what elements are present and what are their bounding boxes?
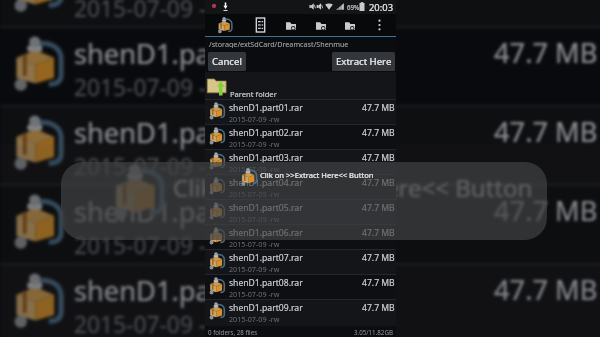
staticText: 47.7 MB: [362, 102, 395, 114]
staticText: shenD1.part05.rar: [229, 202, 303, 214]
staticText: Extract Here: [336, 55, 392, 68]
staticText: shenD1.part01.rar: [229, 102, 303, 114]
staticText: shenD1.part04.rar: [229, 177, 303, 189]
button[interactable]: shenD1.part05.rar: [0, 263, 600, 337]
staticText: 47.7 MB: [362, 177, 395, 189]
staticText: 47.7 MB: [362, 202, 395, 214]
staticText: 2015-07-09 -rw: [74, 0, 234, 24]
button[interactable]: List view: [255, 18, 266, 32]
button[interactable]: shenD1.part09.rar: [205, 299, 396, 324]
staticText: shenD1.part08.rar: [229, 277, 303, 289]
button[interactable]: Copy: [286, 21, 296, 31]
staticText: 47.7 MB: [362, 127, 395, 139]
staticText: 2015-07-09 -rw: [74, 72, 234, 103]
staticText: shenD1.part06.rar: [229, 227, 303, 239]
button[interactable]: shenD1.part06.rar: [205, 224, 396, 249]
button[interactable]: shenD1.part01.rar: [205, 99, 396, 124]
button[interactable]: New folder: [345, 21, 355, 31]
staticText: 47.7 MB: [362, 302, 395, 314]
staticText: 47.7 MB: [362, 152, 395, 164]
staticText: 2015-07-09 -rw: [74, 230, 234, 261]
button[interactable]: shenD1.part05.rar: [205, 199, 396, 224]
staticText: 47.7 MB: [362, 227, 395, 239]
staticText: 2015-07-09 -rw: [74, 151, 234, 182]
staticText: 69%: [347, 3, 360, 11]
staticText: 2015-07-09 -rw: [229, 164, 280, 174]
staticText: 2015-07-09 -rw: [74, 309, 234, 337]
staticText: 2015-07-09 -rw: [229, 314, 280, 324]
button[interactable]: Archive: [217, 17, 233, 33]
staticText: 2015-07-09 -rw: [229, 189, 280, 199]
staticText: 47.7 MB: [362, 252, 395, 264]
staticText: 47.7 MB: [494, 271, 598, 308]
staticText: 3.05/11.82GB: [354, 328, 393, 336]
staticText: 47.7 MB: [494, 34, 598, 71]
button[interactable]: shenD1.part02.rar: [0, 26, 600, 105]
staticText: Parent folder: [230, 89, 277, 99]
staticText: shenD1.part09.rar: [229, 302, 303, 314]
staticText: shenD1.part07.rar: [229, 252, 303, 264]
button[interactable]: More options: [376, 19, 383, 31]
staticText: shenD1.part04.rar: [74, 193, 308, 230]
staticText: shenD1.part05.rar: [74, 272, 308, 309]
staticText: 2015-07-09 -rw: [229, 264, 280, 274]
staticText: shenD1.part02.rar: [74, 35, 308, 72]
staticText: 47.7 MB: [494, 192, 598, 229]
staticText: /storage/extSdCard/Dreamcast/Shenmue: [209, 39, 349, 48]
button[interactable]: shenD1.part03.rar: [205, 149, 396, 174]
staticText: 47.7 MB: [494, 113, 598, 150]
staticText: 0 folders, 28 files: [208, 328, 258, 336]
button[interactable]: shenD1.part03.rar: [0, 105, 600, 184]
staticText: Clik on >>Extract Here<< Button: [260, 170, 374, 180]
staticText: 2015-07-09 -rw: [229, 139, 280, 149]
button[interactable]: shenD1.part04.rar: [0, 184, 600, 263]
staticText: Clik on >>Extract Here<< Button: [173, 171, 533, 204]
staticText: 2015-07-09 -rw: [229, 239, 280, 249]
button[interactable]: Extract Here: [332, 52, 395, 71]
staticText: 47.7 MB: [362, 277, 395, 289]
staticText: shenD1.part02.rar: [229, 127, 303, 139]
button[interactable]: shenD1.part07.rar: [205, 249, 396, 274]
staticText: 2015-07-09 -rw: [229, 114, 280, 124]
button[interactable]: shenD1.part04.rar: [205, 174, 396, 199]
staticText: Cancel: [212, 55, 242, 68]
staticText: shenD1.part03.rar: [229, 152, 303, 164]
staticText: 2015-07-09 -rw: [229, 214, 280, 224]
staticText: 20:03: [369, 1, 394, 14]
button[interactable]: shenD1.part08.rar: [205, 274, 396, 299]
button[interactable]: shenD1.part01.rar: [0, 0, 600, 26]
staticText: shenD1.part03.rar: [74, 114, 308, 151]
button[interactable]: Move: [316, 21, 326, 31]
button[interactable]: Cancel: [208, 52, 246, 71]
button[interactable]: Parent folder: [205, 72, 396, 99]
staticText: 2015-07-09 -rw: [229, 289, 280, 299]
button[interactable]: shenD1.part02.rar: [205, 124, 396, 149]
